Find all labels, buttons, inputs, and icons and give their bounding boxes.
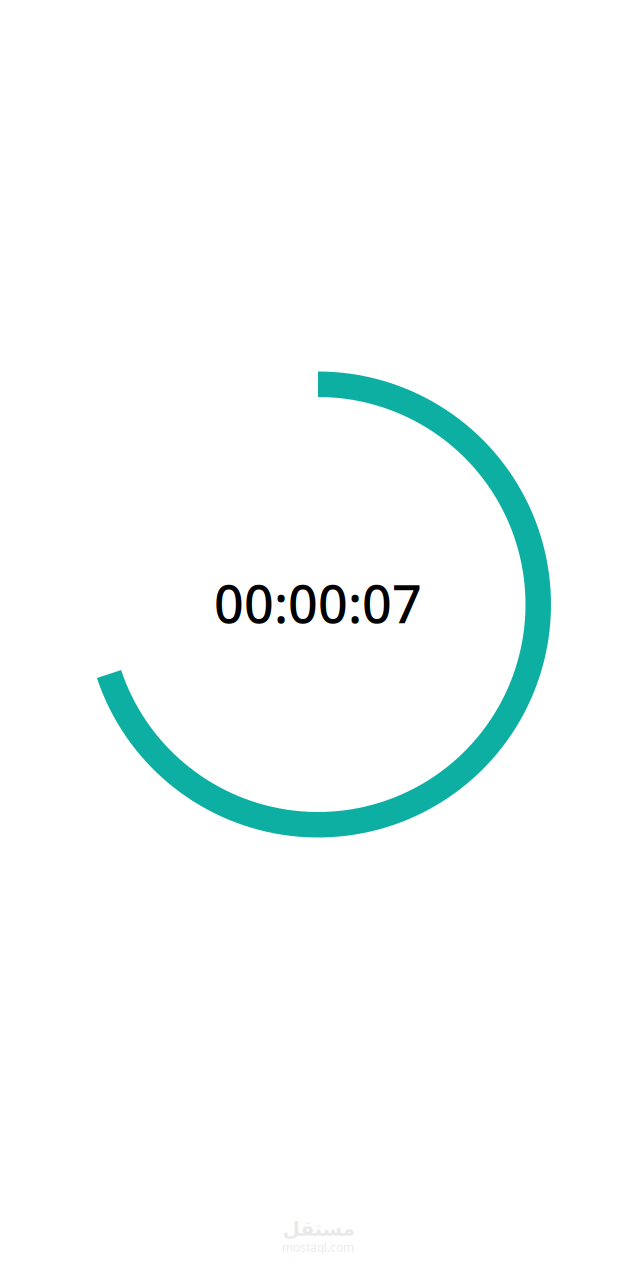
staticText: مستقل: [282, 1217, 354, 1240]
staticText: 00:00:07: [214, 568, 422, 638]
staticText: mostaql.com: [282, 1239, 354, 1255]
button[interactable]: Timer 00:00:07, start or pause: [85, 371, 551, 837]
